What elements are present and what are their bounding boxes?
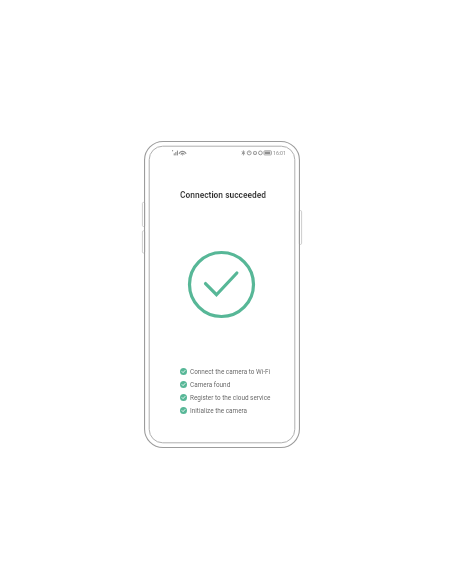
staticText: Register to the cloud service bbox=[190, 394, 271, 402]
other: Connection succeeded bbox=[188, 251, 255, 318]
button[interactable]: Camera found bbox=[180, 378, 270, 391]
staticText: 16:01 bbox=[273, 150, 286, 156]
button[interactable]: Register to the cloud service bbox=[180, 391, 271, 404]
other: Bluetooth, alarm, location and battery s… bbox=[241, 150, 271, 156]
staticText: Initialize the camera bbox=[190, 407, 248, 415]
button[interactable]: Initialize the camera bbox=[180, 404, 270, 417]
staticText: Connection succeeded bbox=[180, 190, 266, 200]
button[interactable]: Connect the camera to Wi-Fi bbox=[180, 365, 271, 378]
staticText: Camera found bbox=[190, 381, 231, 389]
other: Mobile signal and Wi-Fi status bbox=[172, 150, 187, 155]
staticText: Connect the camera to Wi-Fi bbox=[190, 368, 271, 376]
